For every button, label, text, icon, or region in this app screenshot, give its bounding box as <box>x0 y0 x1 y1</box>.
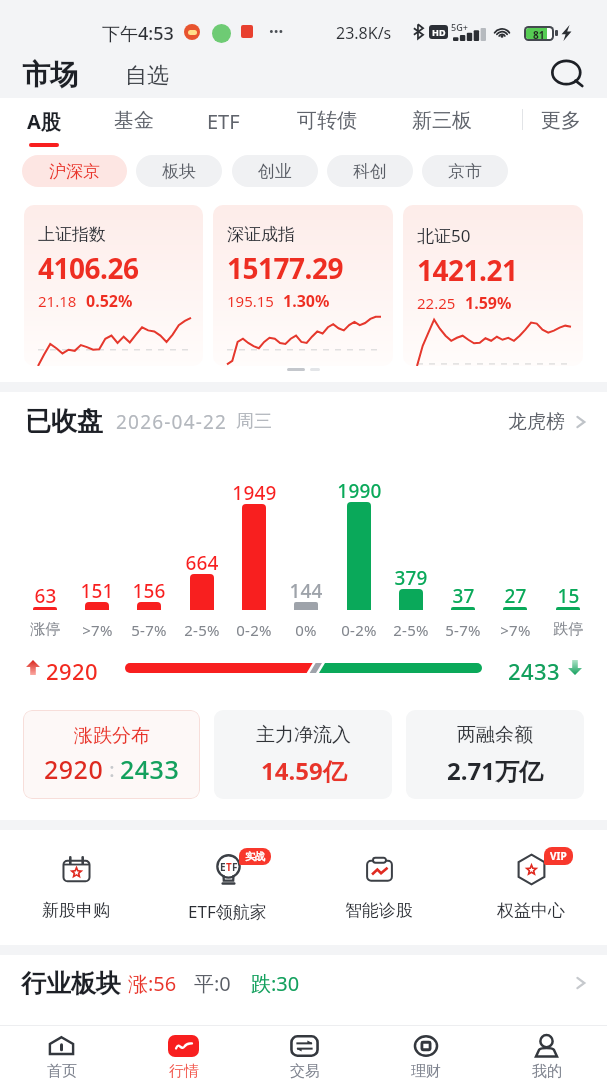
staticText: 跌停 <box>553 620 584 639</box>
button[interactable]: 科创 <box>327 155 413 187</box>
staticText: 上证指数 <box>38 224 106 245</box>
staticText: 0.52% <box>86 290 133 312</box>
staticText: >7% <box>500 620 531 640</box>
button[interactable]: 可转债 <box>283 98 371 150</box>
staticText: 5-7% <box>445 620 481 640</box>
staticText: 科创 <box>353 161 387 182</box>
button[interactable]: 基金 <box>90 98 178 150</box>
button[interactable]: 更多 <box>517 98 605 150</box>
button[interactable]: 沪深京 <box>22 155 127 187</box>
button[interactable]: A股 <box>0 98 88 150</box>
staticText: 两融余额 <box>457 723 533 747</box>
button[interactable]: 北证50 <box>403 205 583 366</box>
staticText: 龙虎榜 <box>508 410 565 434</box>
staticText: 理财 <box>411 1062 441 1080</box>
button[interactable]: 首页 <box>0 1025 122 1080</box>
staticText: 27 <box>504 583 527 609</box>
staticText: 周三 <box>236 410 272 433</box>
button[interactable]: 板块 <box>136 155 222 187</box>
staticText: 5G+ <box>451 21 468 33</box>
staticText: 144 <box>289 578 323 604</box>
staticText: 2-5% <box>184 620 220 640</box>
staticText: ··· <box>269 20 284 43</box>
button[interactable]: 理财 <box>365 1025 486 1080</box>
staticText: 下午4:53 <box>102 21 174 46</box>
button[interactable]: 我的 <box>486 1025 607 1080</box>
staticText: 1949 <box>232 480 277 506</box>
staticText: F <box>232 860 238 874</box>
staticText: 行情 <box>169 1062 199 1080</box>
staticText: 实战 <box>245 850 265 863</box>
staticText: A股 <box>27 108 61 135</box>
staticText: 63 <box>34 583 57 609</box>
staticText: T <box>226 860 232 874</box>
button[interactable]: 深证成指 <box>213 205 393 366</box>
staticText: 195.15 <box>227 291 274 311</box>
staticText: 行业板块 <box>21 968 121 999</box>
staticText: 37 <box>452 583 475 609</box>
staticText: 已收盘 <box>25 405 103 438</box>
button[interactable]: 两融余额 <box>406 710 584 799</box>
staticText: 2433 <box>120 752 180 786</box>
button[interactable]: VIP <box>455 830 607 945</box>
staticText: 更多 <box>541 108 581 133</box>
button[interactable]: 交易 <box>244 1025 365 1080</box>
staticText: 首页 <box>47 1062 77 1080</box>
button[interactable]: 京市 <box>422 155 508 187</box>
staticText: 156 <box>132 578 166 604</box>
staticText: 京市 <box>448 161 482 182</box>
staticText: 板块 <box>162 161 196 182</box>
staticText: >7% <box>82 620 113 640</box>
staticText: 2920 <box>46 656 98 686</box>
staticText: 15 <box>557 583 580 609</box>
staticText: 市场 <box>22 57 78 92</box>
staticText: 4106.26 <box>38 249 139 287</box>
button[interactable]: E <box>151 830 303 945</box>
staticText: 智能诊股 <box>345 900 413 921</box>
staticText: 2920 <box>44 752 104 786</box>
button[interactable]: 创业 <box>232 155 318 187</box>
button[interactable]: 上证指数 <box>24 205 203 366</box>
button[interactable]: 行业板块 <box>21 955 587 1011</box>
staticText: 新股申购 <box>42 900 110 921</box>
staticText: 基金 <box>114 108 154 133</box>
staticText: 1.59% <box>465 292 512 314</box>
staticText: HD <box>432 26 446 38</box>
staticText: 我的 <box>532 1062 562 1080</box>
staticText: ETF <box>207 108 240 135</box>
staticText: 151 <box>80 578 114 604</box>
staticText: 跌:30 <box>251 970 300 997</box>
button[interactable]: ETF <box>179 98 267 150</box>
staticText: 北证50 <box>417 224 471 247</box>
button[interactable]: 新股申购 <box>0 830 151 945</box>
staticText: 2.71万亿 <box>447 754 543 787</box>
button[interactable]: 自选 <box>125 62 169 90</box>
staticText: E <box>220 860 226 874</box>
staticText: 主力净流入 <box>256 723 351 747</box>
staticText: 0% <box>295 620 317 640</box>
staticText: 1.30% <box>283 290 330 312</box>
staticText: 涨跌分布 <box>74 724 150 748</box>
staticText: 0-2% <box>341 620 377 640</box>
staticText: 权益中心 <box>497 900 565 921</box>
staticText: 2026-04-22 <box>116 409 228 435</box>
staticText: 2433 <box>508 656 560 686</box>
staticText: 涨:56 <box>128 970 177 997</box>
button[interactable]: 涨跌分布 <box>23 710 200 799</box>
button[interactable]: 智能诊股 <box>303 830 455 945</box>
staticText: 22.25 <box>417 293 456 313</box>
button[interactable]: 市场 <box>22 57 78 92</box>
button[interactable]: 行情 <box>122 1025 244 1080</box>
staticText: 1990 <box>337 478 382 504</box>
button[interactable]: 新三板 <box>398 98 486 150</box>
staticText: 379 <box>394 565 428 591</box>
staticText: 2-5% <box>393 620 429 640</box>
staticText: 23.8K/s <box>336 22 392 44</box>
staticText: : <box>104 756 120 783</box>
staticText: 1421.21 <box>417 251 518 289</box>
staticText: 沪深京 <box>49 161 100 182</box>
button[interactable]: 已收盘 <box>25 392 587 451</box>
button[interactable]: 主力净流入 <box>214 710 392 799</box>
button[interactable]: Search <box>546 52 590 96</box>
staticText: 21.18 <box>38 291 77 311</box>
